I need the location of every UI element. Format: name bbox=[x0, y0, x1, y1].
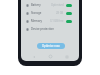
button[interactable]: Memory bbox=[21, 17, 79, 25]
button[interactable]: Optimise now bbox=[37, 43, 65, 49]
button[interactable]: Toggle Battery bbox=[66, 4, 72, 7]
button[interactable]: Toggle Storage bbox=[66, 12, 72, 15]
staticText: 3.1 GB free bbox=[50, 19, 64, 23]
button[interactable]: Storage bbox=[21, 9, 79, 17]
staticText: 28 GB bbox=[56, 11, 64, 15]
staticText: Memory bbox=[31, 19, 43, 23]
staticText: Battery bbox=[31, 3, 41, 7]
staticText: Optimise now bbox=[42, 44, 60, 48]
button[interactable]: Recents bbox=[62, 52, 71, 61]
button[interactable]: Home bbox=[46, 52, 55, 61]
button[interactable]: Toggle Memory bbox=[66, 20, 72, 23]
staticText: Device protection bbox=[31, 27, 54, 31]
button[interactable]: Battery bbox=[21, 1, 79, 9]
button[interactable]: Device protection bbox=[21, 25, 79, 33]
staticText: Optimised bbox=[51, 3, 64, 7]
staticText: Storage bbox=[31, 11, 42, 15]
